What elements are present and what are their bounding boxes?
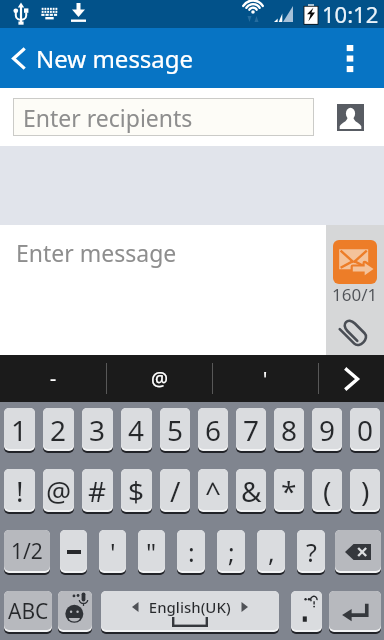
staticText: !: [16, 472, 24, 510]
staticText: 1/2: [11, 537, 43, 566]
button[interactable]: &: [236, 469, 266, 512]
button[interactable]: @: [43, 469, 74, 512]
staticText: @: [46, 472, 72, 510]
button[interactable]: ): [350, 469, 380, 512]
staticText: ^: [205, 472, 222, 510]
staticText: 4: [128, 411, 145, 449]
staticText: *: [281, 472, 297, 510]
button[interactable]: $: [121, 469, 152, 512]
staticText: /: [170, 472, 181, 510]
button[interactable]: More options: [335, 28, 365, 88]
button[interactable]: Space: [101, 591, 279, 632]
button[interactable]: 8: [274, 408, 304, 451]
button[interactable]: Minus: [60, 530, 87, 573]
button[interactable]: -: [0, 355, 106, 402]
button[interactable]: Enter: [329, 591, 381, 632]
staticText: 1: [11, 411, 28, 449]
staticText: English(UK): [141, 597, 239, 617]
staticText: ;: [228, 535, 235, 569]
staticText: Enter recipients: [23, 102, 193, 133]
button[interactable]: *: [274, 469, 304, 512]
button[interactable]: 0: [350, 408, 380, 451]
staticText: 3: [89, 411, 106, 449]
staticText: 10:12: [322, 0, 379, 27]
button[interactable]: 4: [121, 408, 152, 451]
button[interactable]: ': [99, 530, 126, 573]
button[interactable]: 7: [236, 408, 266, 451]
staticText: New message: [36, 42, 194, 75]
staticText: @: [151, 366, 169, 392]
button[interactable]: Period: [291, 591, 322, 632]
button[interactable]: #: [82, 469, 113, 512]
button[interactable]: (: [312, 469, 342, 512]
button[interactable]: 2: [43, 408, 74, 451]
staticText: ,: [268, 535, 275, 569]
staticText: ': [110, 535, 116, 569]
staticText: #: [88, 472, 107, 510]
staticText: &: [241, 472, 262, 510]
staticText: $: [128, 472, 145, 510]
staticText: -: [50, 366, 57, 392]
button[interactable]: ": [138, 530, 165, 573]
button[interactable]: 3: [82, 408, 113, 451]
staticText: 6: [205, 411, 222, 449]
staticText: 7: [243, 411, 260, 449]
button[interactable]: More suggestions: [319, 355, 384, 402]
staticText: (: [323, 472, 332, 510]
staticText: ABC: [8, 597, 49, 626]
button[interactable]: Pick contacts: [337, 104, 364, 131]
button[interactable]: Emoji and voice input: [58, 591, 92, 632]
staticText: 0: [357, 411, 374, 449]
button[interactable]: @: [107, 355, 212, 402]
button[interactable]: 5: [160, 408, 190, 451]
staticText: ): [361, 472, 370, 510]
button[interactable]: :: [177, 530, 205, 573]
button[interactable]: Enter recipients: [13, 98, 314, 136]
button[interactable]: Delete: [335, 530, 381, 573]
staticText: 8: [281, 411, 298, 449]
button[interactable]: ABC: [4, 591, 52, 632]
staticText: ": [146, 535, 157, 569]
button[interactable]: ,: [257, 530, 285, 573]
button[interactable]: /: [160, 469, 190, 512]
staticText: 9: [319, 411, 336, 449]
staticText: 5: [167, 411, 184, 449]
button[interactable]: ?: [297, 530, 325, 573]
staticText: ?: [306, 535, 317, 569]
staticText: Enter message: [16, 237, 177, 268]
button[interactable]: Send message: [333, 240, 377, 284]
staticText: 2: [50, 411, 67, 449]
button[interactable]: Attach file: [338, 317, 372, 351]
button[interactable]: ;: [217, 530, 245, 573]
button[interactable]: Navigate up: [0, 28, 36, 88]
button[interactable]: 1: [4, 408, 35, 451]
staticText: :: [188, 535, 195, 569]
staticText: 160/1: [332, 283, 378, 306]
button[interactable]: ': [213, 355, 318, 402]
button[interactable]: ^: [198, 469, 228, 512]
button[interactable]: 6: [198, 408, 228, 451]
button[interactable]: 1/2: [4, 530, 50, 573]
button[interactable]: !: [4, 469, 35, 512]
staticText: ': [263, 366, 268, 392]
button[interactable]: 9: [312, 408, 342, 451]
